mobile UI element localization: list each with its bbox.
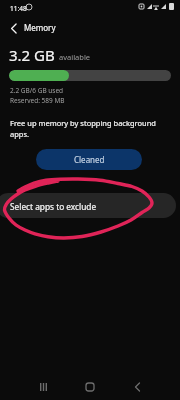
button[interactable]: Back <box>123 373 151 400</box>
staticText: Reserved: 589 MB <box>10 96 65 105</box>
button[interactable]: Home <box>76 373 104 400</box>
staticText: Memory <box>24 22 56 33</box>
button[interactable]: Select apps to exclude <box>0 193 176 218</box>
staticText: Select apps to exclude <box>10 201 97 212</box>
staticText: available <box>59 52 91 62</box>
staticText: 3.2 GB <box>9 45 55 65</box>
button[interactable]: Recent apps <box>29 373 57 400</box>
button[interactable]: Cleaned <box>36 149 142 170</box>
staticText: 2.2 GB/6 GB used <box>10 86 64 95</box>
staticText: Free up memory by stopping background ap… <box>10 118 162 139</box>
button[interactable]: Back <box>4 18 24 38</box>
staticText: Cleaned <box>74 154 105 165</box>
staticText: 11:48 <box>10 4 27 13</box>
